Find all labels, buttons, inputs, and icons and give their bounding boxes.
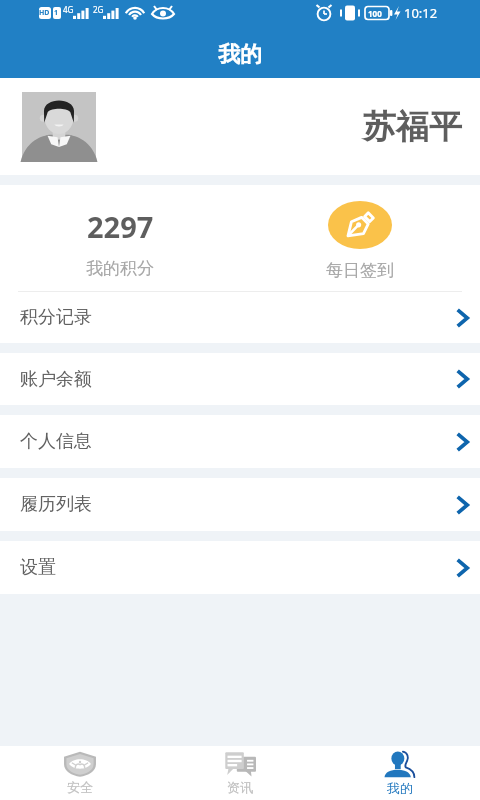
button[interactable]: 2297	[0, 185, 240, 292]
staticText: 账户余额	[20, 368, 92, 391]
staticText: 我的	[218, 41, 262, 69]
staticText: 资讯	[227, 779, 253, 795]
button[interactable]: 每日签到	[240, 185, 480, 292]
staticText: 1	[54, 8, 59, 18]
button[interactable]: 积分记录	[0, 292, 480, 343]
staticText: 10:12	[404, 4, 438, 22]
staticText: 积分记录	[20, 306, 92, 329]
button[interactable]: Security	[0, 746, 160, 800]
button[interactable]: 履历列表	[0, 478, 480, 531]
staticText: 我的积分	[86, 258, 154, 279]
button[interactable]: Profile	[320, 746, 480, 800]
staticText: 4G	[63, 4, 74, 15]
staticText: 每日签到	[326, 260, 394, 281]
button[interactable]: 设置	[0, 541, 480, 594]
staticText: 我的	[387, 780, 413, 796]
button[interactable]: 个人信息	[0, 415, 480, 468]
staticText: 设置	[20, 556, 56, 579]
staticText: 苏福平	[363, 106, 462, 148]
button[interactable]: 苏福平	[0, 78, 480, 175]
staticText: HD	[39, 8, 50, 18]
staticText: 2297	[87, 207, 154, 246]
button[interactable]: 账户余额	[0, 353, 480, 405]
button[interactable]: News	[160, 746, 320, 800]
staticText: 100	[368, 8, 382, 19]
staticText: 安全	[67, 779, 93, 795]
staticText: 履历列表	[20, 493, 92, 516]
staticText: 个人信息	[20, 430, 92, 453]
staticText: 2G	[93, 4, 104, 15]
